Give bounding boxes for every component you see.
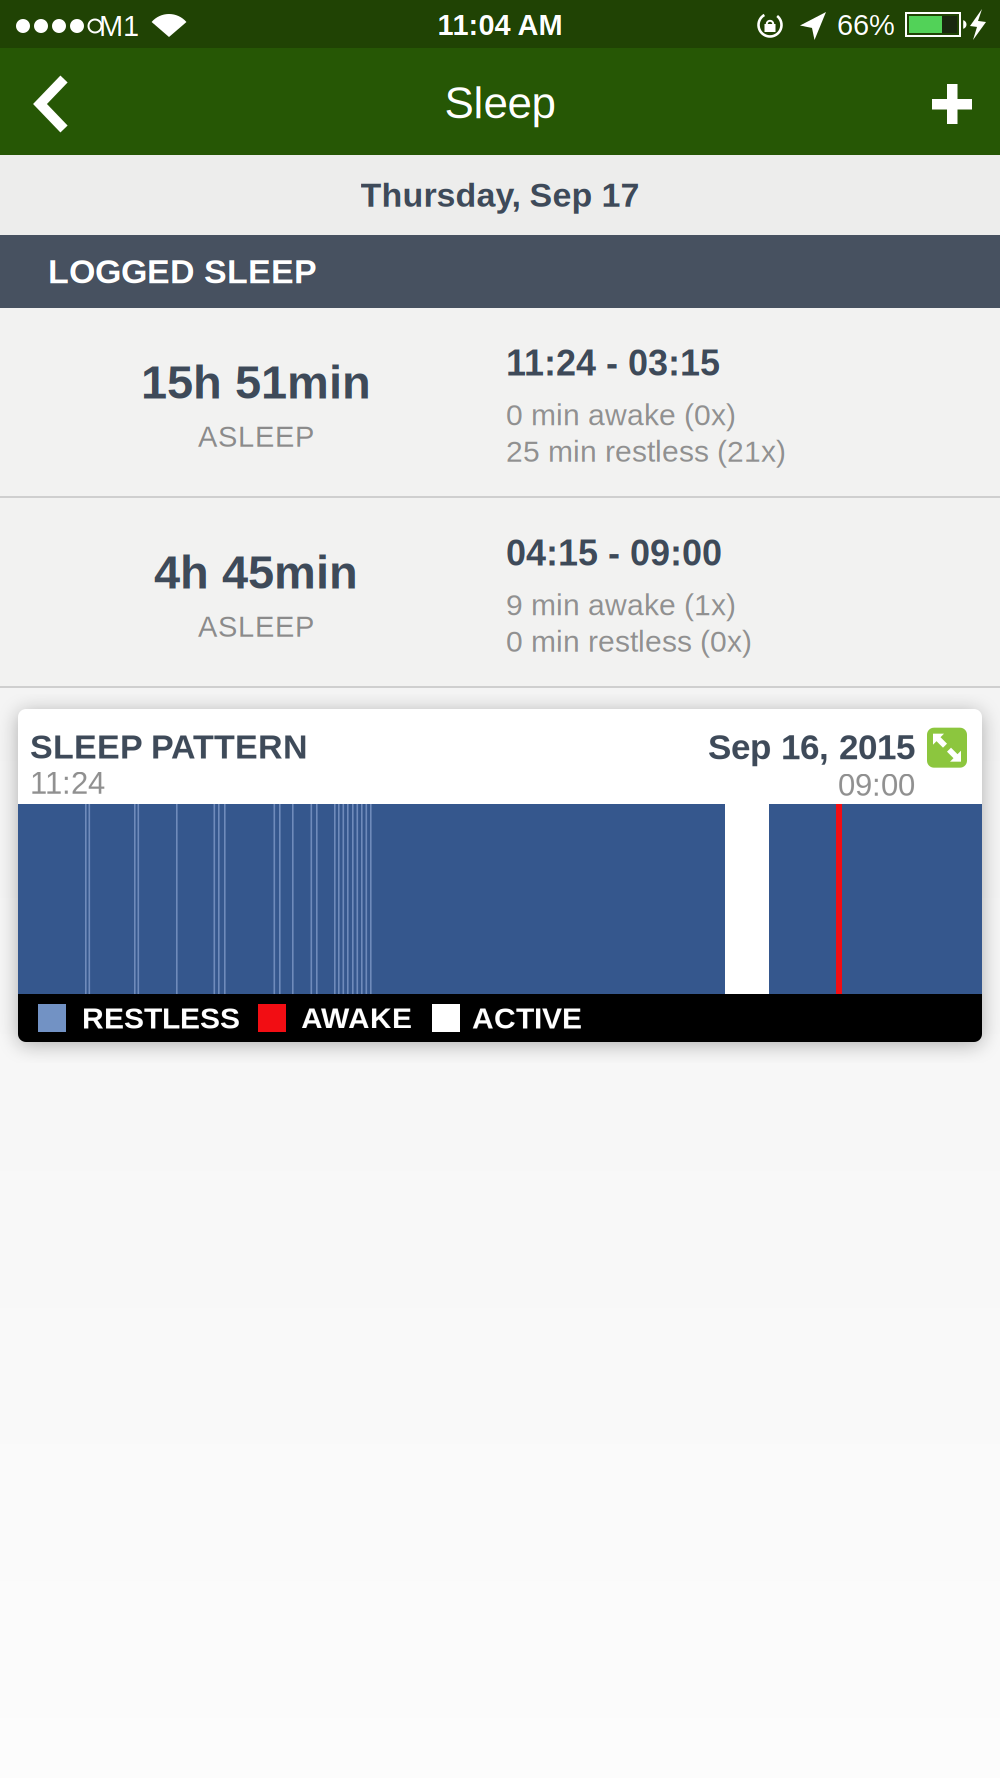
staticText: M1 (99, 10, 139, 42)
staticText: 15h 51min (141, 356, 371, 408)
staticText: 25 min restless (21x) (506, 435, 786, 468)
staticText: 09:00 (838, 768, 915, 802)
staticText: ASLEEP (198, 611, 314, 643)
staticText: 11:24 (30, 766, 105, 800)
staticText: RESTLESS (82, 1001, 240, 1035)
staticText: ASLEEP (198, 421, 314, 453)
staticText: 0 min restless (0x) (506, 625, 752, 658)
staticText: 66% (837, 9, 895, 41)
staticText: 04:15 - 09:00 (506, 533, 722, 573)
staticText: Sleep (444, 78, 555, 128)
staticText: Sep 16, 2015 (708, 728, 915, 767)
staticText: 9 min awake (1x) (506, 588, 736, 622)
staticText: Thursday, Sep 17 (360, 176, 639, 214)
staticText: 11:24 - 03:15 (506, 343, 720, 383)
staticText: 11:04 AM (437, 9, 562, 41)
staticText: SLEEP PATTERN (30, 728, 308, 766)
staticText: AWAKE (301, 1001, 412, 1035)
staticText: 0 min awake (0x) (506, 398, 736, 432)
staticText: 4h 45min (154, 546, 358, 598)
staticText: ACTIVE (472, 1001, 582, 1035)
staticText: LOGGED SLEEP (48, 252, 317, 290)
